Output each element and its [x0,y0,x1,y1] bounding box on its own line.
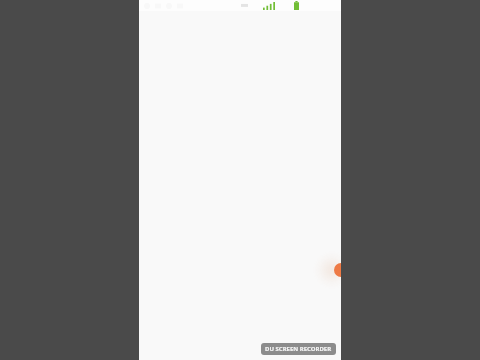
staticText: DU SCREEN RECORDER [265,345,332,353]
button[interactable]: Add [334,263,341,277]
